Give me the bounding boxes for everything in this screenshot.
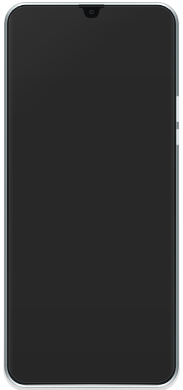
button[interactable]: Smartphone product image [0, 0, 183, 390]
